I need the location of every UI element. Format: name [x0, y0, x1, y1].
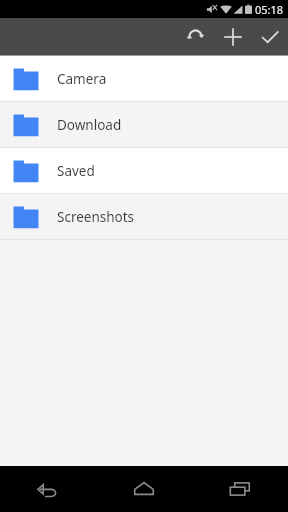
button[interactable]: Download: [0, 102, 288, 147]
button[interactable]: Refresh: [177, 18, 214, 55]
button[interactable]: Recent apps: [192, 466, 288, 512]
button[interactable]: Add: [214, 18, 251, 55]
staticText: Download: [57, 116, 122, 134]
staticText: 05:18: [255, 2, 284, 17]
button[interactable]: Camera: [0, 56, 288, 101]
button[interactable]: Back: [0, 466, 96, 512]
button[interactable]: Screenshots: [0, 194, 288, 239]
button[interactable]: Home: [96, 466, 192, 512]
staticText: Saved: [57, 162, 95, 180]
staticText: Camera: [57, 70, 107, 88]
staticText: Screenshots: [57, 208, 135, 226]
button[interactable]: Confirm: [251, 18, 288, 55]
button[interactable]: Saved: [0, 148, 288, 193]
